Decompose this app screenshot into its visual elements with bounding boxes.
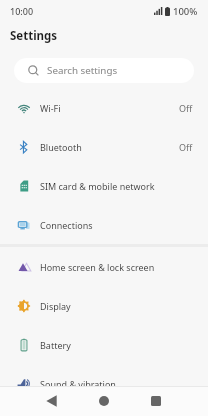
button[interactable]: Search settings bbox=[14, 58, 194, 83]
staticText: Bluetooth bbox=[40, 141, 82, 153]
button[interactable]: Display bbox=[0, 286, 208, 325]
staticText: Sound & vibration bbox=[40, 378, 116, 390]
staticText: 10:00 bbox=[10, 5, 34, 17]
staticText: Home screen & lock screen bbox=[40, 261, 155, 273]
button[interactable]: Home screen & lock screen bbox=[0, 247, 208, 286]
staticText: 100% bbox=[173, 5, 198, 18]
staticText: Connections bbox=[40, 219, 93, 231]
button[interactable]: Back bbox=[35, 386, 67, 416]
staticText: Battery bbox=[40, 339, 71, 351]
staticText: Display bbox=[40, 300, 71, 312]
button[interactable]: Battery bbox=[0, 325, 208, 364]
button[interactable]: Connections bbox=[0, 205, 208, 244]
button[interactable]: Sound & vibration bbox=[0, 364, 208, 403]
button[interactable]: Bluetooth bbox=[0, 127, 208, 166]
button[interactable]: Recents bbox=[140, 386, 172, 416]
button[interactable]: SIM card & mobile network bbox=[0, 166, 208, 205]
staticText: Settings bbox=[10, 28, 58, 44]
staticText: Wi-Fi bbox=[40, 102, 61, 114]
staticText: SIM card & mobile network bbox=[40, 180, 155, 192]
staticText: Off bbox=[179, 102, 193, 114]
staticText: Off bbox=[179, 141, 193, 153]
button[interactable]: Home bbox=[88, 386, 120, 416]
staticText: Search settings bbox=[47, 64, 118, 77]
button[interactable]: Wi-Fi bbox=[0, 88, 208, 127]
